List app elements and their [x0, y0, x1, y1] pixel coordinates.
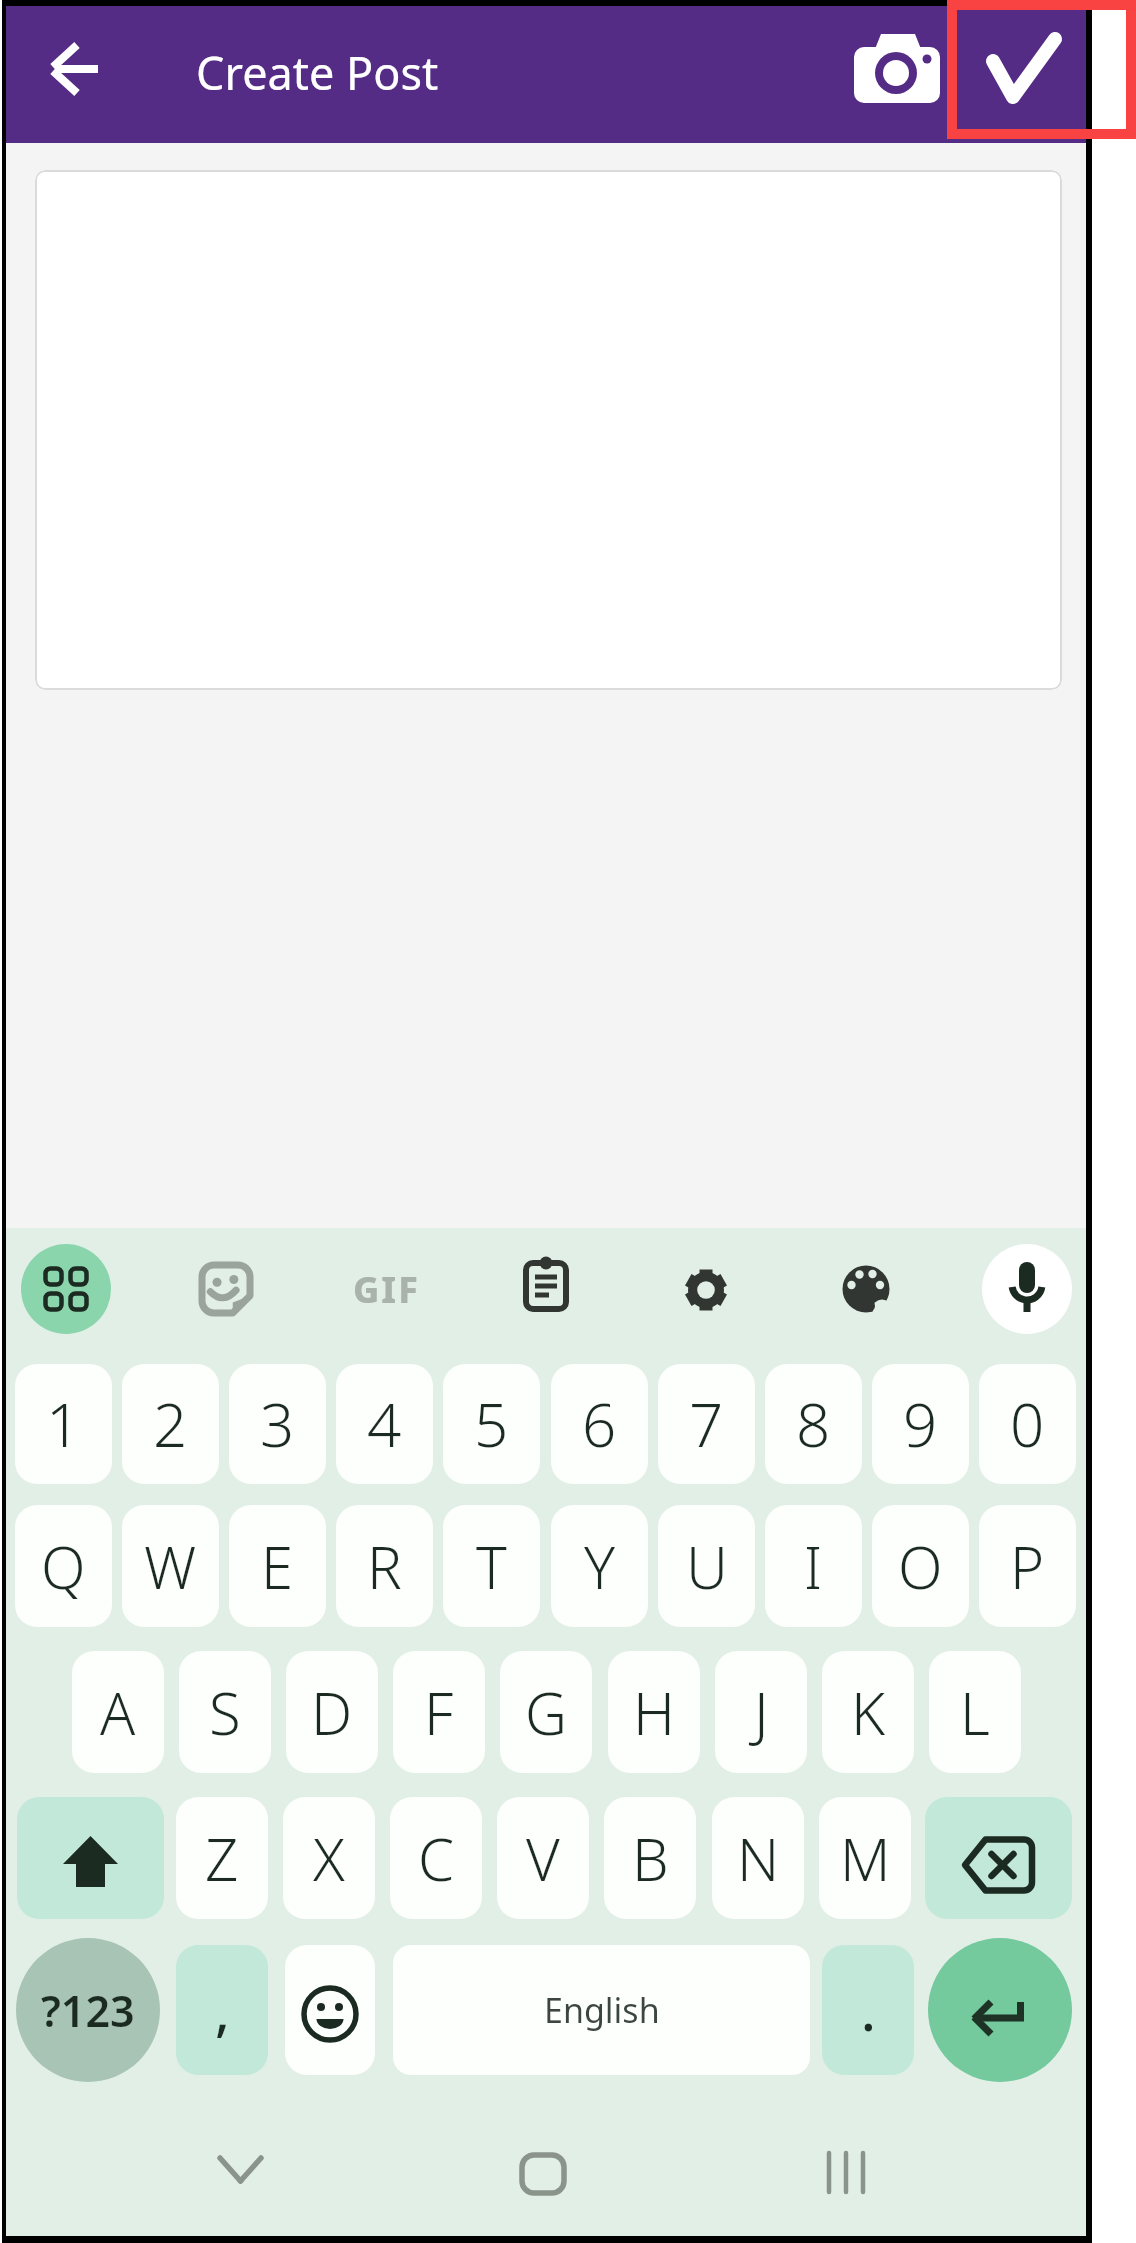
staticText: 4: [367, 1383, 402, 1465]
button[interactable]: D: [286, 1651, 378, 1773]
staticText: J: [754, 1673, 769, 1752]
staticText: R: [367, 1527, 402, 1606]
staticText: Z: [205, 1819, 239, 1898]
staticText: 5: [474, 1383, 509, 1465]
button[interactable]: GIF: [341, 1244, 431, 1334]
button[interactable]: J: [715, 1651, 807, 1773]
button[interactable]: 2: [122, 1364, 219, 1484]
button[interactable]: Y: [551, 1505, 648, 1627]
button[interactable]: 0: [979, 1364, 1076, 1484]
button[interactable]: [983, 28, 1069, 112]
button[interactable]: 8: [765, 1364, 862, 1484]
staticText: W: [144, 1527, 197, 1606]
button[interactable]: [848, 28, 948, 120]
button[interactable]: [524, 1257, 568, 1311]
staticText: C: [418, 1819, 455, 1898]
button[interactable]: I: [765, 1505, 862, 1627]
staticText: E: [261, 1527, 294, 1606]
staticText: K: [851, 1673, 886, 1752]
staticText: U: [686, 1527, 728, 1606]
button[interactable]: S: [179, 1651, 271, 1773]
staticText: 7: [689, 1383, 724, 1465]
staticText: F: [424, 1673, 454, 1752]
button[interactable]: 7: [658, 1364, 755, 1484]
staticText: I: [804, 1527, 823, 1606]
button[interactable]: ?123: [16, 1938, 160, 2082]
staticText: O: [898, 1527, 943, 1606]
button[interactable]: U: [658, 1505, 755, 1627]
button[interactable]: [47, 39, 107, 99]
button[interactable]: .: [822, 1945, 914, 2075]
button[interactable]: N: [712, 1797, 804, 1919]
button[interactable]: K: [822, 1651, 914, 1773]
button[interactable]: Q: [15, 1505, 112, 1627]
staticText: Create Post: [196, 42, 439, 103]
staticText: ?123: [41, 1981, 135, 2040]
staticText: H: [633, 1673, 675, 1752]
button[interactable]: [925, 1797, 1072, 1919]
staticText: N: [737, 1819, 780, 1898]
staticText: GIF: [353, 1265, 420, 1314]
staticText: 9: [903, 1383, 938, 1465]
staticText: ,: [215, 1973, 230, 2047]
button[interactable]: [285, 1945, 375, 2075]
button[interactable]: [21, 1244, 111, 1334]
staticText: T: [476, 1527, 507, 1606]
button[interactable]: T: [443, 1505, 540, 1627]
button[interactable]: M: [819, 1797, 911, 1919]
button[interactable]: A: [72, 1651, 164, 1773]
staticText: 3: [260, 1383, 295, 1465]
button[interactable]: W: [122, 1505, 219, 1627]
staticText: B: [632, 1819, 669, 1898]
staticText: 8: [796, 1383, 831, 1465]
button[interactable]: 5: [443, 1364, 540, 1484]
button[interactable]: G: [500, 1651, 592, 1773]
button[interactable]: [928, 1938, 1072, 2082]
staticText: .: [861, 1973, 876, 2047]
button[interactable]: E: [229, 1505, 326, 1627]
staticText: D: [311, 1673, 353, 1752]
button[interactable]: C: [390, 1797, 482, 1919]
staticText: M: [840, 1819, 891, 1898]
button[interactable]: [796, 2148, 896, 2238]
button[interactable]: R: [336, 1505, 433, 1627]
button[interactable]: [838, 1261, 894, 1317]
button[interactable]: P: [979, 1505, 1076, 1627]
button[interactable]: 4: [336, 1364, 433, 1484]
staticText: V: [526, 1819, 560, 1898]
button[interactable]: [982, 1244, 1072, 1334]
button[interactable]: ,: [176, 1945, 268, 2075]
button[interactable]: [17, 1797, 164, 1919]
button[interactable]: 3: [229, 1364, 326, 1484]
button[interactable]: V: [497, 1797, 589, 1919]
button[interactable]: H: [608, 1651, 700, 1773]
button[interactable]: 9: [872, 1364, 969, 1484]
button[interactable]: X: [283, 1797, 375, 1919]
staticText: 1: [46, 1383, 81, 1465]
button[interactable]: 6: [551, 1364, 648, 1484]
button[interactable]: [35, 170, 1062, 690]
staticText: A: [100, 1673, 136, 1752]
button[interactable]: 1: [15, 1364, 112, 1484]
button[interactable]: F: [393, 1651, 485, 1773]
staticText: G: [525, 1673, 567, 1752]
staticText: Q: [41, 1527, 86, 1606]
staticText: 0: [1010, 1383, 1045, 1465]
staticText: P: [1010, 1527, 1045, 1606]
staticText: X: [313, 1819, 345, 1898]
button[interactable]: [190, 2148, 290, 2238]
staticText: S: [209, 1673, 241, 1752]
button[interactable]: English: [393, 1945, 810, 2075]
button[interactable]: [677, 1261, 733, 1317]
staticText: 2: [153, 1383, 188, 1465]
staticText: 6: [582, 1383, 617, 1465]
button[interactable]: [198, 1261, 254, 1317]
button[interactable]: B: [604, 1797, 696, 1919]
staticText: English: [544, 1987, 660, 2033]
staticText: Y: [584, 1527, 616, 1606]
staticText: L: [960, 1673, 990, 1752]
button[interactable]: Z: [176, 1797, 268, 1919]
button[interactable]: O: [872, 1505, 969, 1627]
button[interactable]: L: [929, 1651, 1021, 1773]
button[interactable]: [493, 2148, 593, 2238]
